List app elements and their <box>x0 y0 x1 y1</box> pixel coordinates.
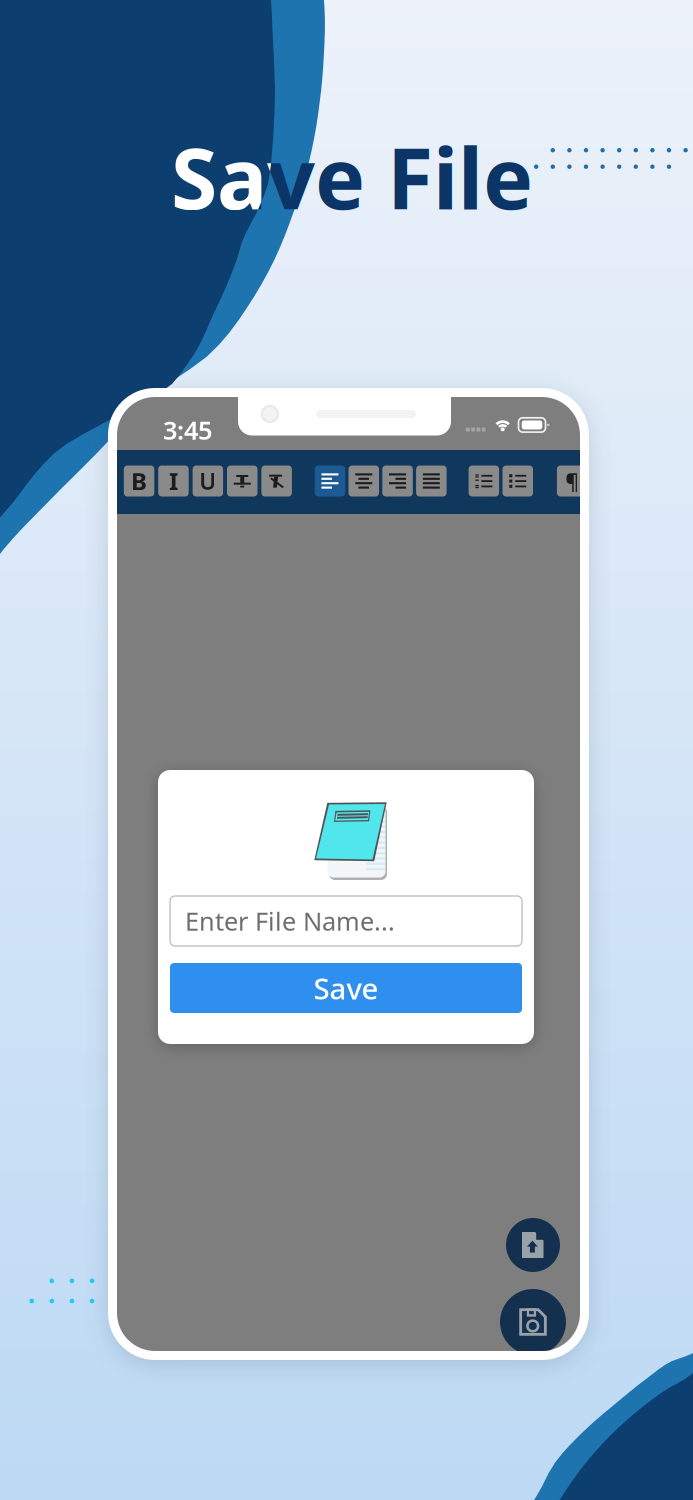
staticText: 3:45 <box>163 413 212 447</box>
staticText: U <box>199 466 216 496</box>
button[interactable] <box>227 465 257 496</box>
button[interactable] <box>348 465 379 496</box>
staticText: Save File <box>171 121 533 232</box>
button[interactable] <box>315 465 345 496</box>
staticText: I <box>169 465 178 497</box>
button[interactable]: U <box>193 465 223 496</box>
button[interactable]: Save <box>170 963 522 1013</box>
button[interactable]: Enter File Name... <box>170 896 522 946</box>
button[interactable]: ¶ <box>557 465 587 496</box>
button[interactable] <box>261 465 292 496</box>
staticText: B <box>131 465 147 497</box>
button[interactable]: Import file <box>506 1218 560 1272</box>
staticText: Enter File Name... <box>185 904 395 938</box>
button[interactable] <box>382 465 413 496</box>
staticText: ¶ <box>565 467 579 495</box>
button[interactable] <box>502 465 533 496</box>
button[interactable]: B <box>124 465 154 496</box>
staticText: Save <box>313 968 378 1007</box>
button[interactable]: Save file <box>500 1289 566 1355</box>
staticText: Save File <box>171 121 533 232</box>
button[interactable] <box>416 465 447 496</box>
button[interactable]: I <box>158 465 189 496</box>
button[interactable] <box>469 465 499 496</box>
